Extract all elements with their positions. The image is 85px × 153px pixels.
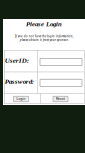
- button[interactable]: Reset: [53, 96, 68, 102]
- button[interactable]: Login: [13, 96, 28, 102]
- staticText: Reset: [56, 97, 65, 101]
- staticText: Login: [16, 97, 25, 101]
- staticText: UserID:: [5, 57, 29, 64]
- staticText: Password:: [5, 78, 34, 85]
- staticText: Please Login: [26, 20, 62, 28]
- staticText: If you do not have the login information…: [14, 34, 73, 42]
